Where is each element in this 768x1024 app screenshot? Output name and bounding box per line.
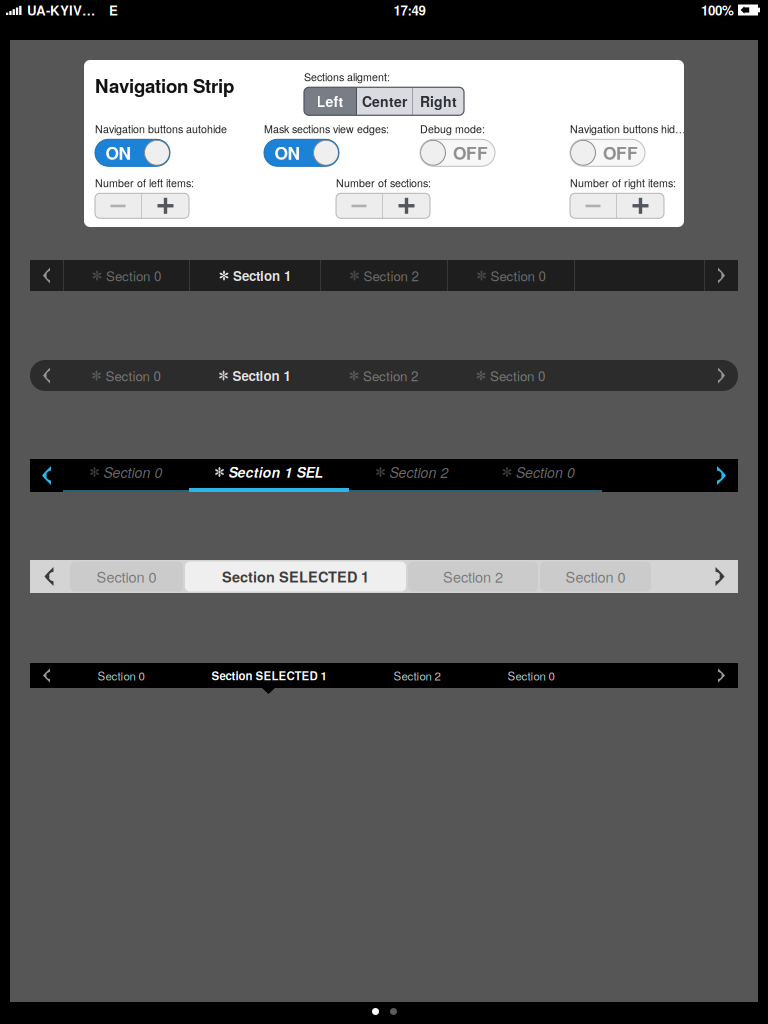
staticText: 17:49 — [393, 0, 425, 20]
staticText: Section 0 — [565, 566, 625, 587]
staticText: Debug mode: — [420, 121, 485, 136]
staticText: Section 2 — [443, 566, 503, 587]
staticText: Navigation buttons hid… — [570, 121, 686, 136]
staticText: Section 0 — [516, 462, 575, 482]
button[interactable]: Increment — [383, 193, 430, 218]
staticText: Section 0 — [106, 266, 161, 285]
staticText: Number of left items: — [95, 175, 194, 190]
staticText: Sections aligment: — [304, 69, 390, 84]
button[interactable]: Right — [413, 87, 464, 115]
staticText: Number of right items: — [570, 175, 676, 190]
button[interactable]: Previous — [30, 260, 63, 291]
staticText: Navigation buttons autohide — [95, 121, 227, 136]
button[interactable]: Next — [705, 260, 738, 291]
staticText: Section 2 — [363, 266, 418, 285]
staticText: Section 2 — [363, 366, 418, 385]
staticText: E — [109, 0, 118, 20]
button[interactable]: Next — [705, 459, 738, 492]
staticText: Section 0 — [97, 667, 144, 684]
staticText: Navigation Strip — [95, 72, 234, 99]
button[interactable]: Section 2 — [349, 459, 475, 492]
button[interactable]: Increment — [142, 193, 189, 218]
staticText: Right — [420, 91, 457, 111]
staticText: Section 0 — [105, 366, 160, 385]
button[interactable]: Previous — [30, 360, 63, 391]
staticText: ON — [274, 140, 300, 165]
button[interactable]: Section 0 — [540, 561, 651, 591]
button[interactable]: Previous — [30, 560, 68, 593]
button[interactable]: OFF — [570, 139, 645, 166]
button[interactable]: ON — [95, 139, 170, 166]
staticText: OFF — [603, 140, 638, 165]
staticText: UA-KYIV… — [27, 0, 95, 20]
button[interactable]: Section 0 — [63, 360, 189, 391]
button[interactable]: ON — [264, 139, 339, 166]
staticText: Section SELECTED 1 — [211, 667, 326, 684]
button[interactable]: Section 0 — [64, 260, 189, 291]
button[interactable]: Previous — [30, 663, 63, 688]
button[interactable]: Next — [705, 663, 738, 688]
staticText: Mask sections view edges: — [264, 121, 389, 136]
button[interactable]: Section 1 SEL — [189, 459, 349, 492]
button[interactable]: Section 1 — [190, 260, 320, 291]
button[interactable]: Section 0 — [70, 561, 183, 591]
button[interactable]: Section 2 — [359, 663, 475, 688]
button[interactable]: Section 0 — [448, 260, 574, 291]
button[interactable]: Section 1 — [189, 360, 320, 391]
staticText: Section 1 — [233, 266, 291, 285]
staticText: OFF — [453, 140, 488, 165]
staticText: 100% — [701, 0, 734, 20]
staticText: ON — [105, 140, 131, 165]
button[interactable]: Section 2 — [408, 561, 538, 591]
staticText: Section 2 — [393, 667, 440, 684]
button[interactable]: Section 0 — [475, 459, 602, 492]
button[interactable]: Section SELECTED 1 — [179, 663, 359, 688]
staticText: Section 0 — [507, 667, 554, 684]
button[interactable]: Next — [705, 360, 738, 391]
button[interactable]: Increment — [617, 193, 664, 218]
button[interactable]: Previous — [30, 459, 63, 492]
staticText: Section 0 — [490, 366, 545, 385]
button[interactable]: Next — [702, 560, 738, 593]
button[interactable]: Section 0 — [63, 663, 179, 688]
staticText: Number of sections: — [336, 175, 431, 190]
staticText: Section 1 SEL — [228, 462, 323, 482]
button[interactable]: OFF — [420, 139, 495, 166]
staticText: Section 1 — [232, 366, 290, 385]
button[interactable]: Section 0 — [447, 360, 574, 391]
staticText: Section SELECTED 1 — [222, 566, 369, 587]
button[interactable]: Decrement — [570, 193, 616, 218]
staticText: Center — [362, 91, 407, 111]
button[interactable]: Left — [304, 87, 356, 115]
button[interactable]: Center — [357, 87, 412, 115]
button[interactable]: Section 2 — [320, 360, 447, 391]
staticText: Section 0 — [103, 462, 162, 482]
staticText: Section 0 — [490, 266, 545, 285]
button[interactable]: Section 0 — [63, 459, 189, 492]
button[interactable]: Decrement — [336, 193, 382, 218]
button[interactable]: Decrement — [95, 193, 141, 218]
staticText: Section 2 — [389, 462, 448, 482]
button[interactable]: Section 2 — [321, 260, 447, 291]
button[interactable]: Section 0 — [475, 663, 587, 688]
staticText: Section 0 — [96, 566, 156, 587]
button[interactable]: Section SELECTED 1 — [185, 561, 406, 591]
staticText: Left — [316, 91, 343, 111]
